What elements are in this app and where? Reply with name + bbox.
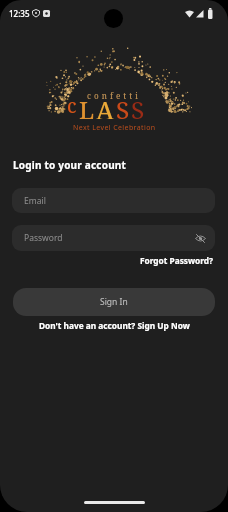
button[interactable]: Sign In [13,288,215,316]
staticText: c [67,93,79,119]
staticText: Sign In [100,296,128,308]
staticText: Email [24,195,46,207]
button[interactable]: Forgot Password? [140,255,214,266]
button[interactable]: Password [12,225,215,251]
staticText: Login to your account [13,158,127,172]
staticText: Password [24,232,63,244]
staticText: S [116,93,131,119]
staticText: L [79,93,96,119]
staticText: 12:35 [9,8,30,19]
button[interactable]: Don't have an account? Sign Up Now [0,320,228,331]
staticText: A [96,93,116,119]
staticText: Forgot Password? [140,255,214,266]
staticText: Next Level Celebration [73,123,156,133]
staticText: Don't have an account? Sign Up Now [39,320,190,331]
staticText: S [131,93,145,119]
staticText: confetti [87,90,141,101]
button[interactable]: Email [12,188,215,213]
